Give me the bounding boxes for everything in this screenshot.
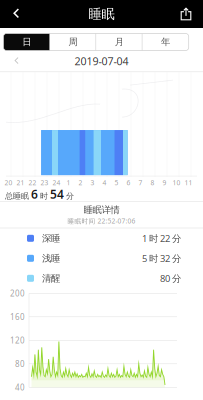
- staticText: 160: [10, 311, 25, 322]
- button[interactable]: 深睡: [0, 228, 203, 248]
- button[interactable]: 年: [142, 33, 189, 50]
- button[interactable]: 清醒: [0, 268, 203, 288]
- staticText: 日: [22, 36, 31, 48]
- staticText: 10: [172, 178, 180, 187]
- staticText: 深睡: [42, 233, 60, 244]
- staticText: 月: [115, 36, 124, 48]
- staticText: 4: [102, 178, 106, 187]
- button[interactable]: 日: [3, 33, 50, 50]
- staticText: 3: [90, 178, 94, 187]
- button[interactable]: 浅睡: [0, 248, 203, 268]
- staticText: 5 时 32 分: [142, 252, 181, 264]
- staticText: 9: [162, 178, 166, 187]
- staticText: 2: [78, 178, 82, 187]
- button[interactable]: 月: [96, 33, 142, 50]
- button[interactable]: Share: [174, 2, 198, 26]
- staticText: 时: [38, 191, 50, 201]
- staticText: 周: [68, 36, 77, 48]
- staticText: 24: [52, 178, 60, 187]
- staticText: 清醒: [42, 273, 60, 284]
- staticText: 120: [10, 335, 25, 346]
- staticText: 23: [40, 178, 48, 187]
- button[interactable]: Back: [5, 2, 29, 26]
- staticText: 54: [50, 186, 64, 202]
- button[interactable]: 周: [50, 33, 96, 50]
- staticText: 7: [138, 178, 142, 187]
- staticText: 21: [16, 178, 24, 187]
- staticText: 分: [64, 191, 74, 201]
- staticText: 浅睡: [42, 253, 60, 264]
- staticText: 5: [114, 178, 118, 187]
- staticText: 8: [150, 178, 154, 187]
- staticText: 200: [10, 288, 25, 299]
- staticText: 22: [28, 178, 36, 187]
- staticText: 总睡眠: [5, 191, 31, 201]
- staticText: 20: [4, 178, 12, 187]
- button[interactable]: Previous day: [5, 53, 29, 69]
- staticText: 2019-07-04: [74, 54, 128, 68]
- staticText: 睡眠时间 22:52-07:06: [67, 216, 135, 225]
- staticText: 80: [15, 358, 25, 369]
- staticText: 40: [15, 382, 25, 393]
- staticText: 11: [184, 178, 192, 187]
- staticText: 1: [66, 178, 70, 187]
- staticText: 80 分: [160, 272, 181, 284]
- staticText: 睡眠: [88, 6, 114, 22]
- staticText: 1 时 22 分: [142, 232, 181, 244]
- staticText: 睡眠详情: [83, 204, 119, 215]
- staticText: 年: [161, 36, 170, 48]
- staticText: 6: [126, 178, 130, 187]
- staticText: 6: [31, 186, 38, 202]
